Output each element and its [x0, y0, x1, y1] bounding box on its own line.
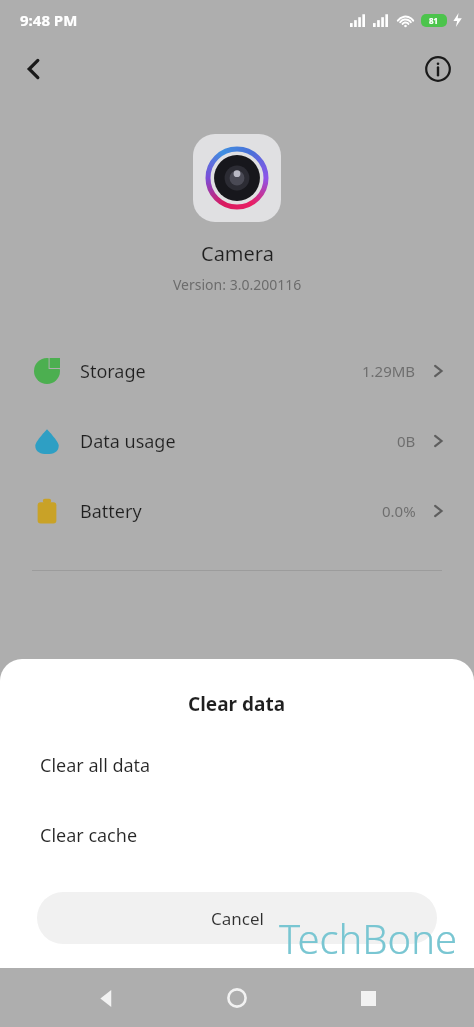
button[interactable]: App info — [414, 45, 462, 93]
button[interactable]: Home — [213, 974, 261, 1022]
button[interactable]: Battery — [0, 476, 474, 546]
staticText: Clear cache — [40, 823, 138, 848]
staticText: 81 — [429, 15, 439, 26]
button[interactable]: Clear all data — [0, 753, 474, 778]
staticText: 1.29MB — [362, 361, 416, 381]
button[interactable]: Cancel — [37, 892, 437, 944]
staticText: 0B — [397, 431, 416, 451]
staticText: Storage — [80, 359, 146, 384]
button[interactable]: Storage — [0, 336, 474, 406]
button[interactable]: Data usage — [0, 406, 474, 476]
button[interactable]: Clear cache — [0, 823, 474, 848]
staticText: Clear data — [188, 691, 286, 717]
staticText: Version: 3.0.200116 — [173, 275, 302, 294]
staticText: Battery — [80, 499, 142, 524]
staticText: TechBone — [279, 911, 458, 965]
button[interactable]: Back — [83, 974, 131, 1022]
button[interactable]: Back — [10, 45, 58, 93]
staticText: Camera — [201, 240, 274, 267]
staticText: 0.0% — [382, 501, 416, 521]
button[interactable]: Recents — [344, 974, 392, 1022]
staticText: Cancel — [211, 907, 264, 930]
staticText: Data usage — [80, 429, 176, 454]
staticText: Clear all data — [40, 753, 151, 778]
staticText: 9:48 PM — [20, 10, 78, 30]
